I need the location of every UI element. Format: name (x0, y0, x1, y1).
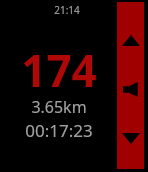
staticText: 3.65km (31, 96, 87, 118)
button[interactable]: Volume down (117, 128, 144, 148)
staticText: 21:14 (54, 3, 80, 17)
staticText: 174 (21, 40, 97, 100)
staticText: 00:17:23 (25, 119, 93, 142)
button[interactable]: Speaker (117, 78, 144, 100)
button[interactable]: Volume up (117, 30, 144, 50)
